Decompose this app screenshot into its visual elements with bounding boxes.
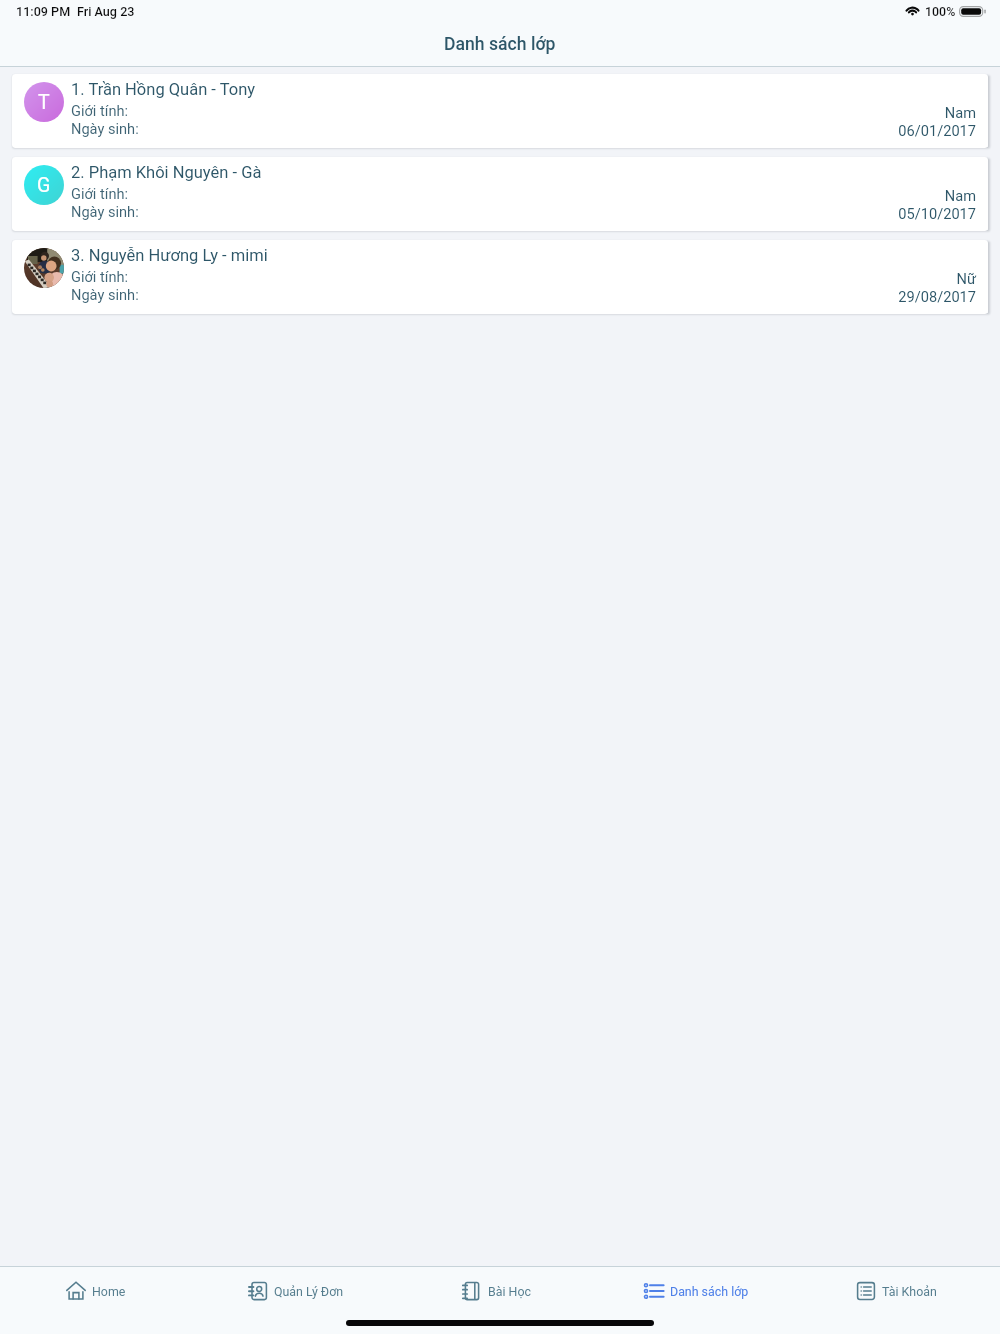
button[interactable]: Bài Học — [400, 1267, 600, 1314]
staticText: Danh sách lớp — [444, 34, 556, 55]
staticText: Nam — [12, 187, 976, 204]
staticText: Giới tính: — [71, 268, 129, 285]
staticText: Fri Aug 23 — [77, 4, 135, 19]
button[interactable]: Danh sách lớp — [600, 1267, 800, 1314]
staticText: 1. Trần Hồng Quân - Tony — [71, 80, 256, 99]
staticText: Danh sách lớp — [670, 1284, 749, 1299]
staticText: Giới tính: — [71, 102, 129, 119]
staticText: Bài Học — [488, 1284, 531, 1299]
staticText: Ngày sinh: — [71, 286, 139, 303]
staticText: Giới tính: — [71, 185, 129, 202]
staticText: 29/08/2017 — [12, 288, 976, 305]
staticText: Quản Lý Đơn — [274, 1284, 344, 1299]
button[interactable]: T — [12, 74, 988, 148]
staticText: Nam — [12, 104, 976, 121]
staticText: Tài Khoản — [882, 1284, 937, 1299]
staticText: Ngày sinh: — [71, 203, 139, 220]
staticText: Nữ — [12, 270, 976, 287]
staticText: 100% — [925, 4, 956, 19]
staticText: 06/01/2017 — [12, 122, 976, 139]
button[interactable]: 3. Nguyễn Hương Ly - mimi — [12, 240, 988, 314]
button[interactable]: Quản Lý Đơn — [200, 1267, 400, 1314]
staticText: Home — [92, 1284, 126, 1299]
button[interactable]: Tài Khoản — [800, 1267, 1000, 1314]
staticText: 11:09 PM — [16, 4, 71, 19]
staticText: T — [38, 91, 50, 114]
button[interactable]: Home — [0, 1267, 200, 1314]
staticText: 2. Phạm Khôi Nguyên - Gà — [71, 163, 262, 182]
button[interactable]: G — [12, 157, 988, 231]
staticText: 05/10/2017 — [12, 205, 976, 222]
staticText: G — [37, 174, 51, 197]
staticText: Ngày sinh: — [71, 120, 139, 137]
staticText: 3. Nguyễn Hương Ly - mimi — [71, 246, 268, 265]
